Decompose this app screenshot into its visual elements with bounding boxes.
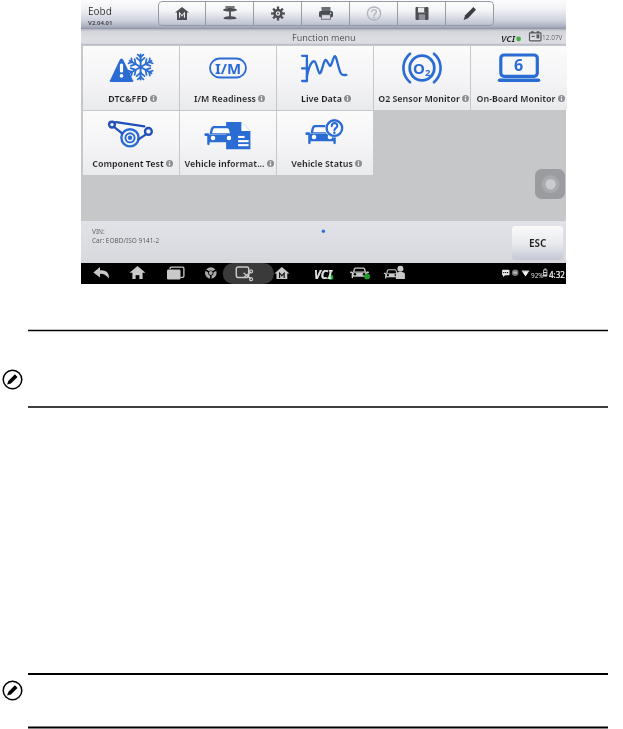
button[interactable]: Vehicle scan	[206, 1, 254, 26]
staticText: Car: EOBD/ISO 9141-2	[92, 236, 160, 245]
button[interactable]: Help	[350, 1, 398, 26]
staticText: VCI	[501, 32, 516, 44]
staticText: Component Test	[92, 158, 164, 170]
button[interactable]: Settings	[254, 1, 302, 26]
button[interactable]: ESC	[512, 226, 563, 260]
button[interactable]: O	[374, 46, 470, 110]
staticText: VCI	[314, 267, 333, 283]
button[interactable]: Edit	[446, 1, 494, 26]
staticText: 4:32	[549, 269, 565, 280]
staticText: 12.07V	[542, 33, 563, 42]
button[interactable]: Vehicle Status	[277, 111, 373, 175]
staticText: 92%	[531, 271, 544, 280]
staticText: DTC&FFD	[108, 93, 148, 105]
button[interactable]: Component Test	[83, 111, 179, 175]
staticText: I/M Readiness	[194, 93, 256, 105]
button[interactable]: Home	[158, 1, 206, 26]
staticText: VIN:	[92, 227, 105, 236]
staticText: Function menu	[292, 31, 356, 43]
staticText: O	[413, 58, 425, 78]
staticText: O2 Sensor Monitor	[378, 93, 460, 105]
staticText: V2.04.01	[88, 19, 113, 27]
staticText: 6	[514, 54, 524, 76]
button[interactable]: DTC&FFD	[83, 46, 179, 110]
button[interactable]: Print	[302, 1, 350, 26]
button[interactable]: 6	[471, 46, 567, 110]
staticText: I/M	[215, 58, 242, 78]
staticText: Vehicle Status	[291, 158, 353, 170]
staticText: Vehicle informat...	[184, 158, 265, 170]
staticText: ESC	[529, 236, 547, 250]
button[interactable]: VCI quick access	[535, 169, 565, 199]
button[interactable]: I/M	[180, 46, 276, 110]
staticText: 2	[425, 66, 431, 79]
staticText: Eobd	[88, 4, 112, 18]
button[interactable]: Live Data	[277, 46, 373, 110]
staticText: Live Data	[301, 93, 342, 105]
button[interactable]: Vehicle informat...	[180, 111, 276, 175]
button[interactable]: Save	[398, 1, 446, 26]
staticText: On-Board Monitor	[476, 93, 556, 105]
